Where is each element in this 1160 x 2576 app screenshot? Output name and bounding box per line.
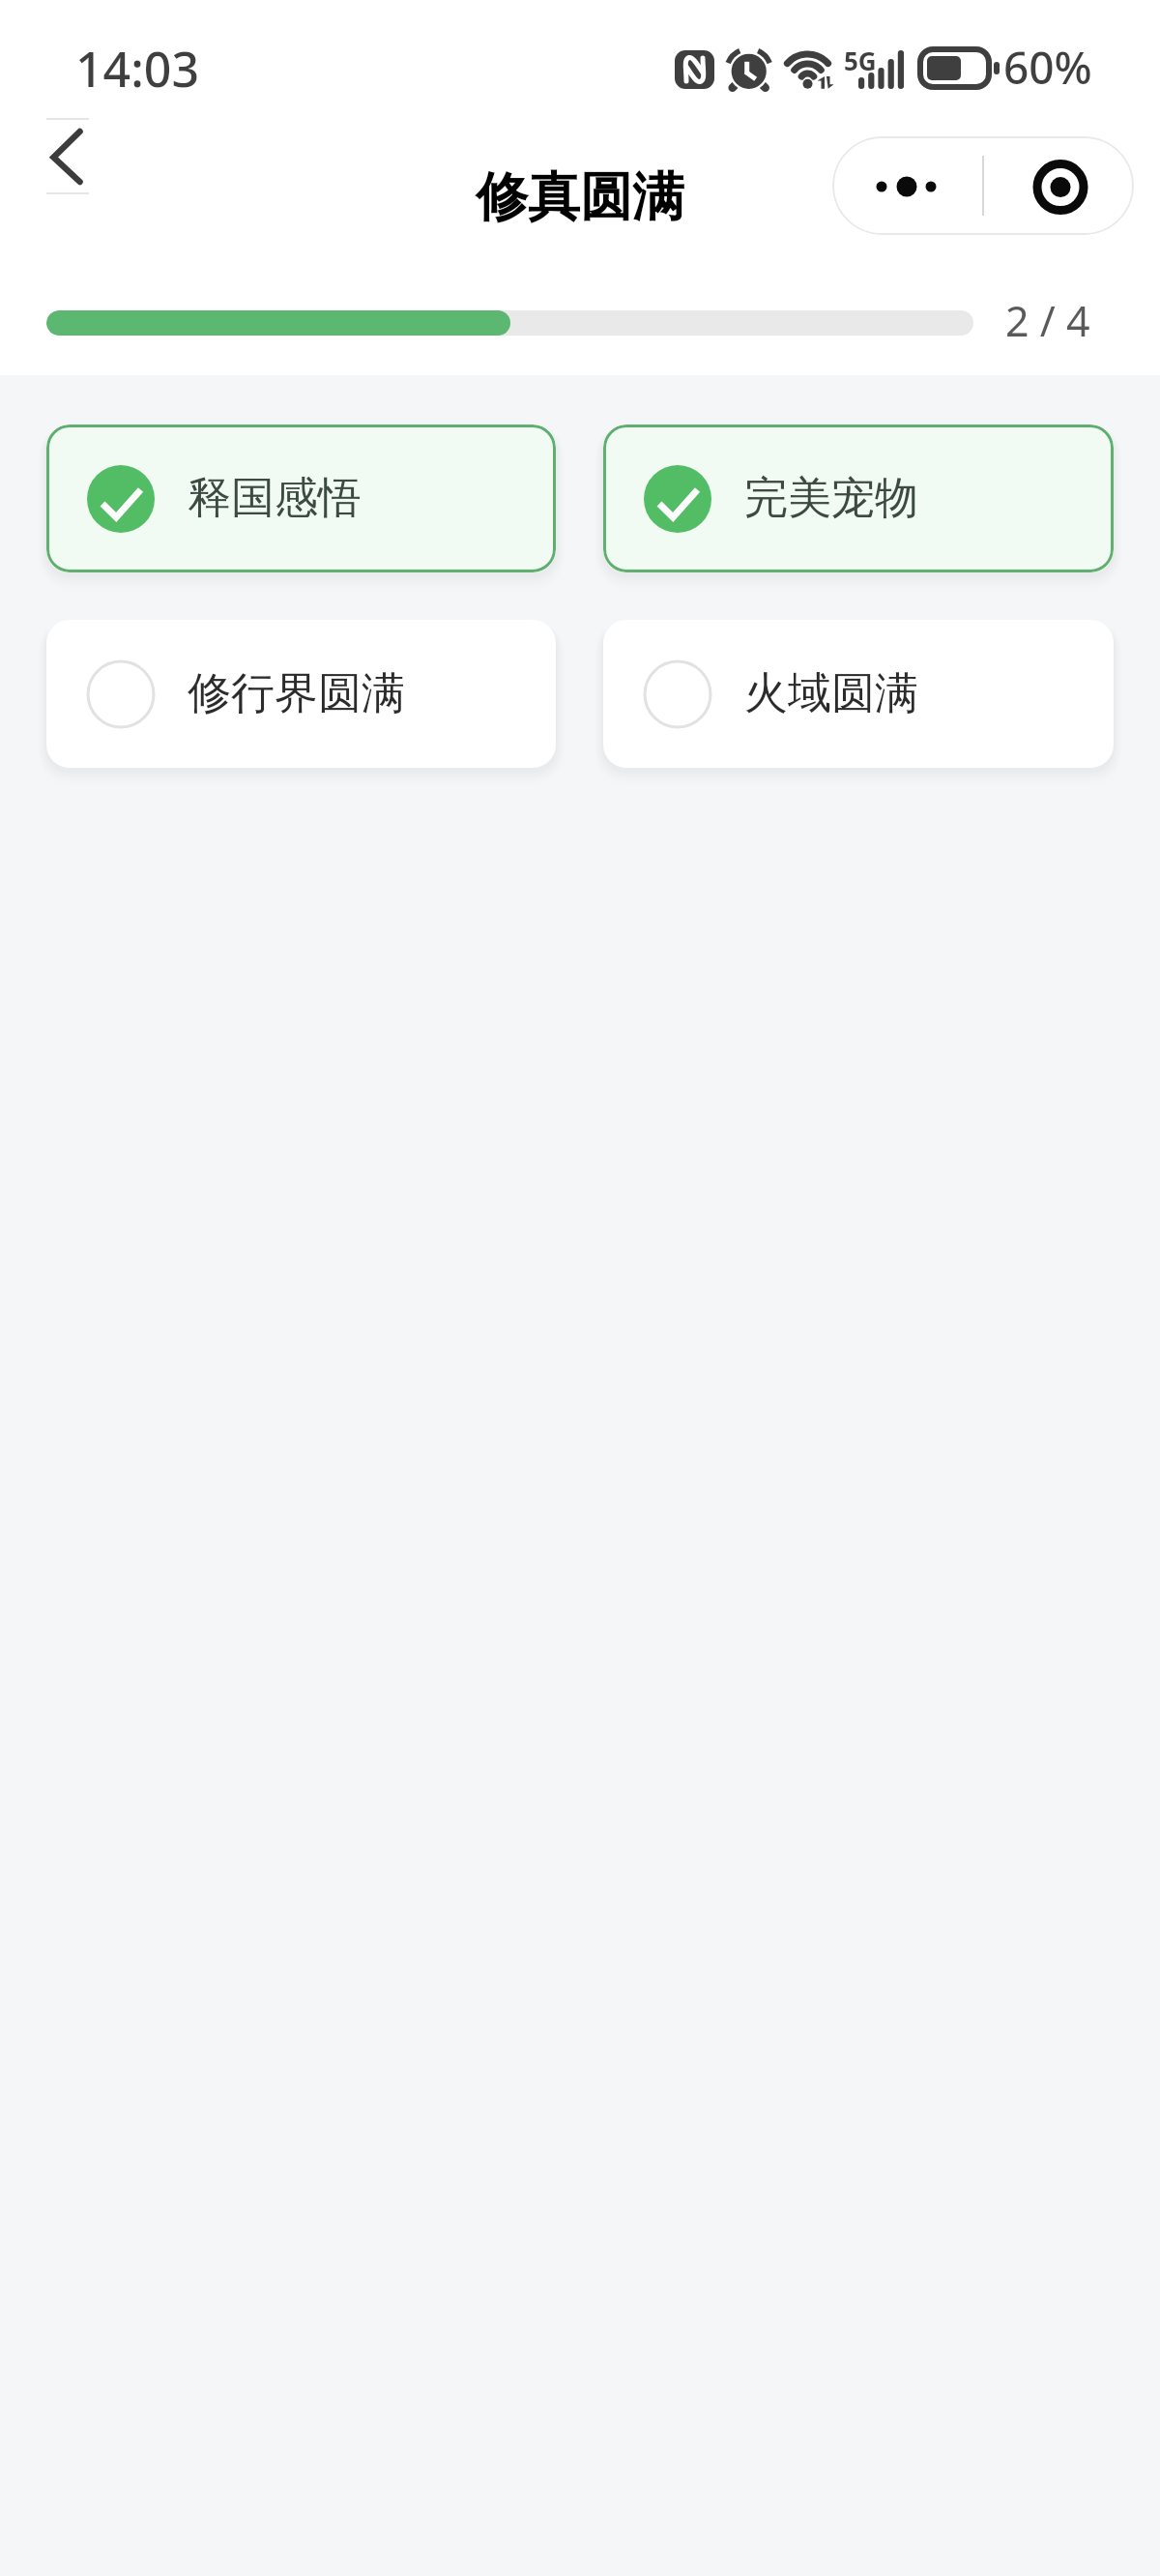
staticText: 火域圆满 <box>744 666 918 721</box>
button[interactable]: 修行界圆满 <box>46 620 556 768</box>
staticText: 14:03 <box>75 36 199 102</box>
staticText: 修真圆满 <box>0 164 1160 230</box>
button[interactable]: 释国感悟 <box>46 424 556 572</box>
staticText: 完美宠物 <box>744 471 918 526</box>
staticText: 60% <box>1003 37 1092 98</box>
staticText: 2 / 4 <box>1005 292 1090 349</box>
staticText: 释国感悟 <box>188 471 362 526</box>
staticText: 修行界圆满 <box>188 666 405 721</box>
button[interactable]: More <box>832 136 983 235</box>
button[interactable]: Close <box>983 136 1134 235</box>
staticText: 5G <box>844 44 877 77</box>
button[interactable]: 火域圆满 <box>603 620 1114 768</box>
button[interactable]: 完美宠物 <box>603 424 1114 572</box>
button[interactable]: Back <box>17 108 110 205</box>
